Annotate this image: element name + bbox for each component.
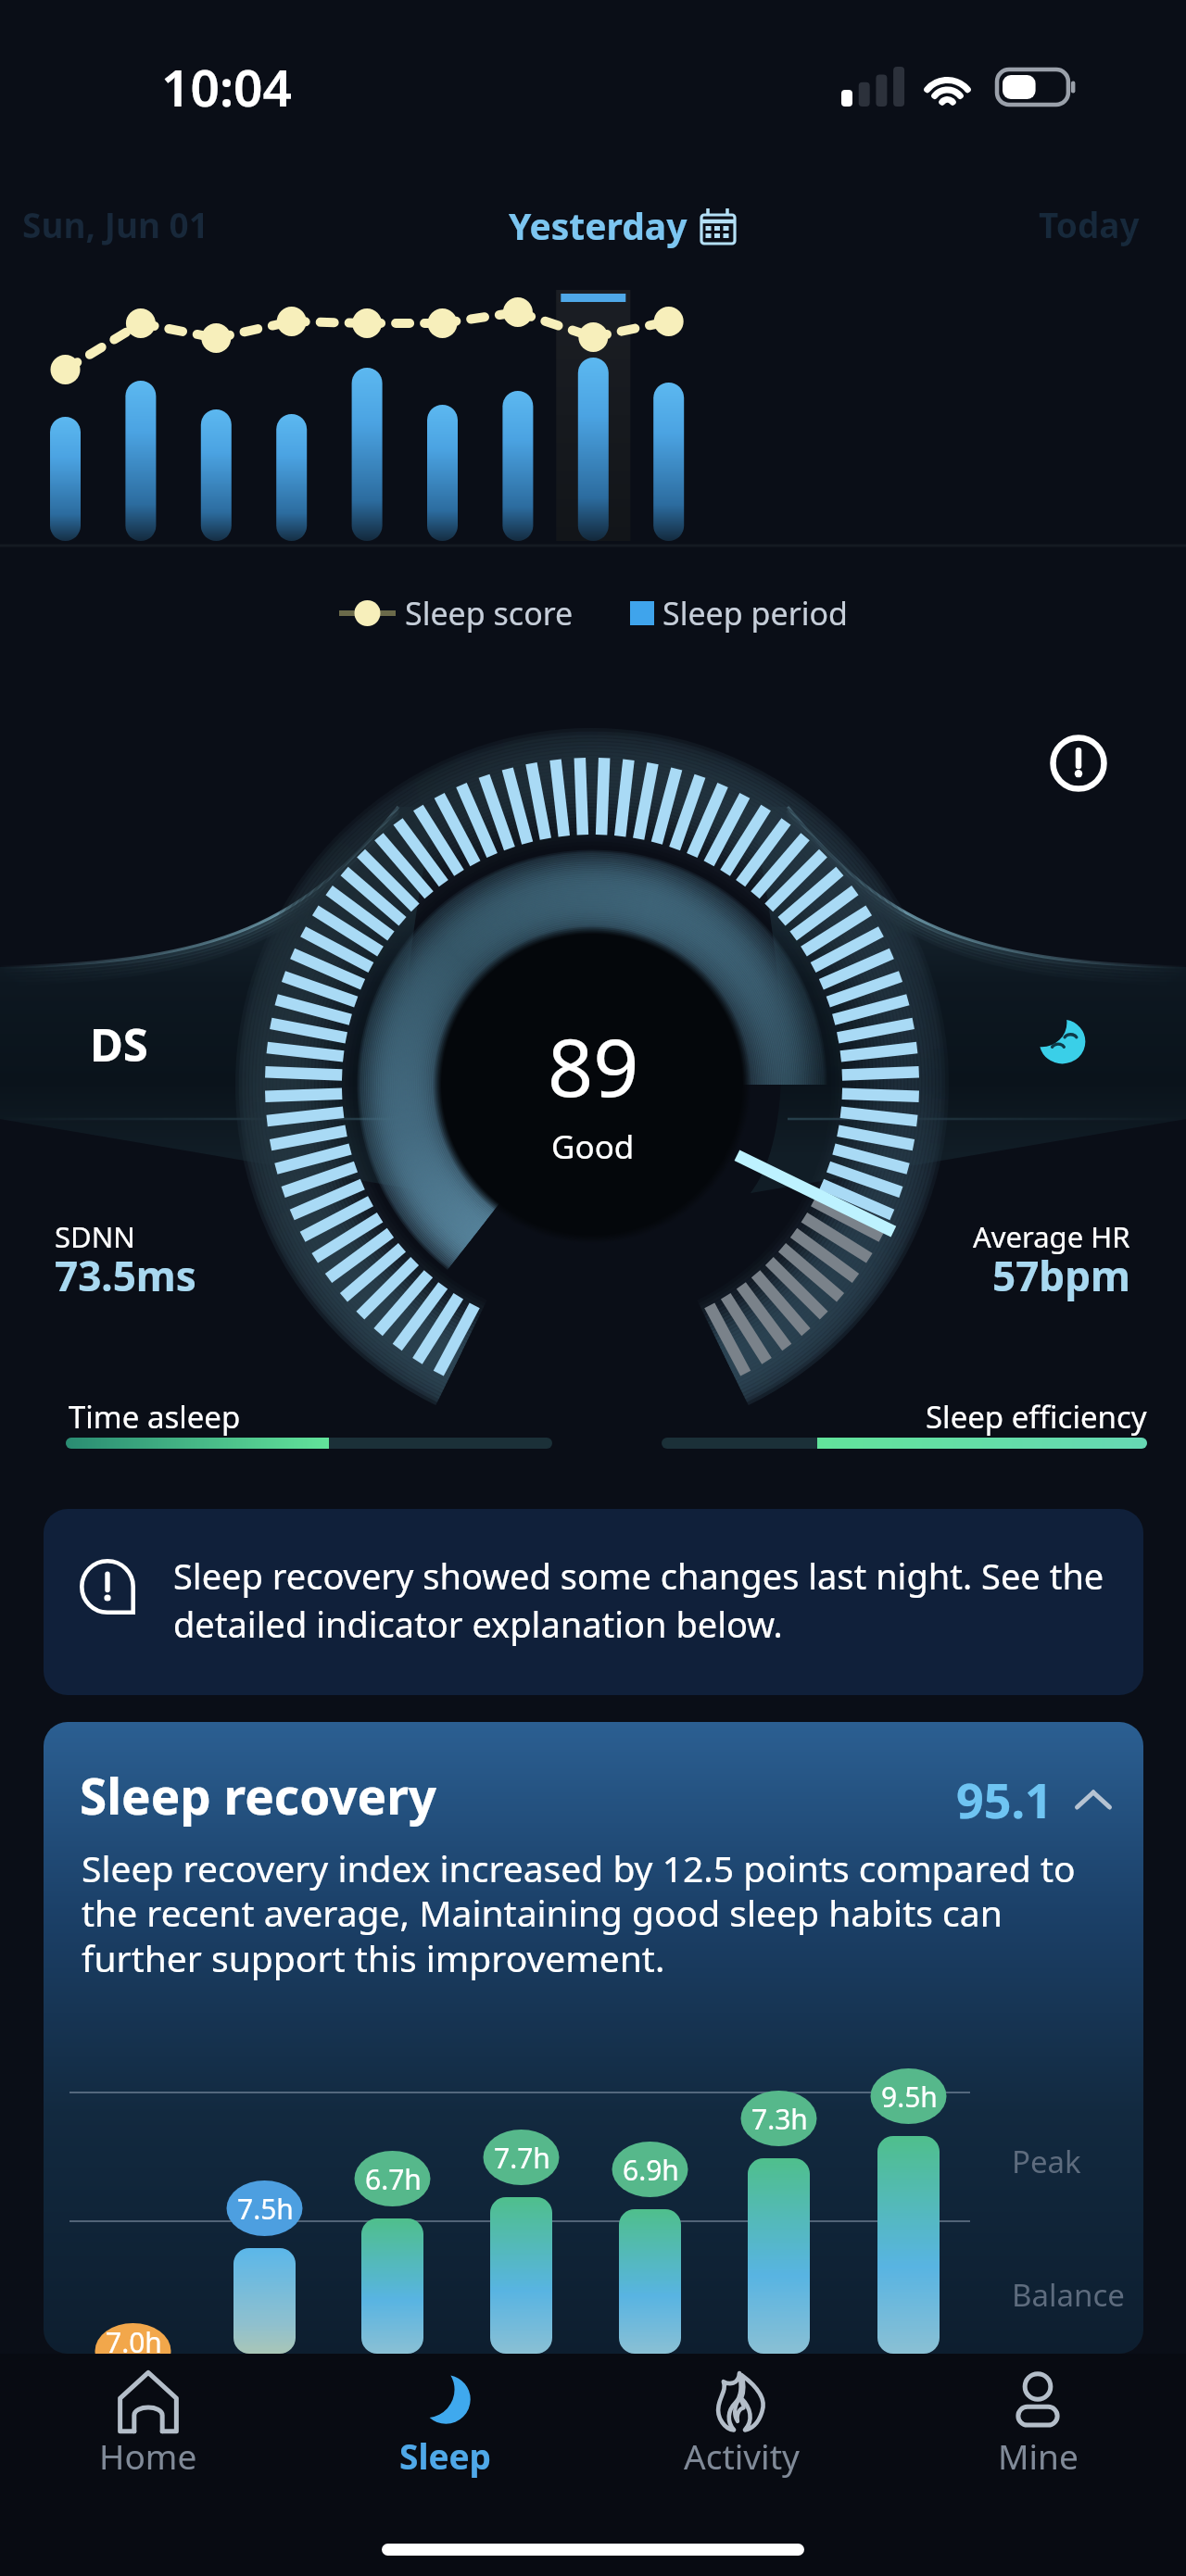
button[interactable]: Yesterday	[509, 201, 737, 250]
staticText: DS	[90, 1013, 148, 1075]
staticText: Sleep recovery index increased by 12.5 p…	[82, 1843, 1088, 1983]
staticText: 57bpm	[992, 1248, 1130, 1303]
staticText: Time asleep	[69, 1396, 241, 1438]
button[interactable]: Information	[1050, 735, 1107, 792]
staticText: Mine	[998, 2432, 1079, 2479]
staticText: Activity	[684, 2432, 800, 2479]
staticText: 7.5h	[237, 2190, 294, 2228]
staticText: Yesterday	[509, 201, 688, 250]
staticText: 6.7h	[365, 2160, 422, 2198]
staticText: 89	[548, 1012, 639, 1120]
staticText: Sleep efficiency	[926, 1396, 1147, 1438]
staticText: 10:04	[161, 52, 293, 121]
staticText: Sleep period	[662, 592, 848, 635]
staticText: 7.7h	[494, 2139, 550, 2177]
staticText: Sleep	[399, 2432, 491, 2479]
button[interactable]: Activity	[593, 2354, 889, 2488]
staticText: Balance	[1012, 2274, 1125, 2316]
staticText: 73.5ms	[55, 1248, 196, 1303]
staticText: Sun, Jun 01	[22, 201, 208, 247]
button[interactable]: Mine	[889, 2354, 1186, 2488]
staticText: 7.0h	[106, 2323, 162, 2354]
button[interactable]: Sleep	[296, 2354, 593, 2488]
staticText: Sleep score	[405, 592, 574, 635]
button[interactable]: Sleep recovery showed some changes last …	[44, 1509, 1143, 1695]
button[interactable]: Home	[0, 2354, 296, 2488]
staticText: Average HR	[973, 1217, 1130, 1256]
staticText: 6.9h	[623, 2151, 679, 2189]
staticText: Today	[1039, 201, 1140, 247]
staticText: 95.1	[956, 1766, 1053, 1832]
button[interactable]: Sleep recovery	[44, 1722, 1143, 2354]
staticText: 9.5h	[881, 2078, 938, 2116]
staticText: Peak	[1012, 2141, 1081, 2182]
staticText: Sleep recovery	[80, 1762, 437, 1828]
staticText: 7.3h	[751, 2100, 808, 2138]
staticText: Good	[551, 1125, 635, 1169]
staticText: SDNN	[55, 1217, 135, 1256]
staticText: Sleep recovery showed some changes last …	[173, 1552, 1143, 1648]
staticText: Home	[99, 2432, 197, 2479]
